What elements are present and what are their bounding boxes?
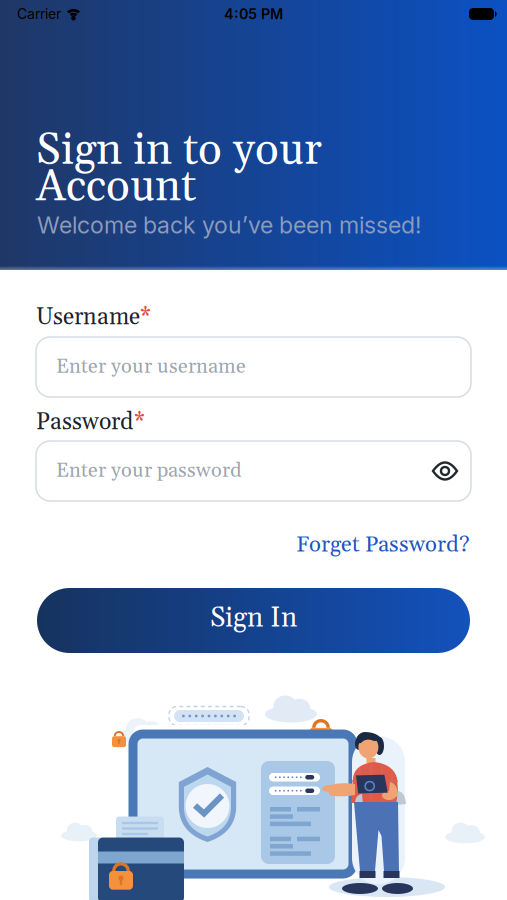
- staticText: Enter your username: [56, 354, 246, 380]
- button[interactable]: Show password: [432, 460, 458, 482]
- staticText: *: [134, 408, 145, 437]
- staticText: 4:05 PM: [224, 5, 283, 23]
- staticText: *: [140, 303, 151, 332]
- staticText: Sign in to your: [36, 123, 322, 179]
- staticText: Account: [36, 159, 196, 215]
- staticText: Password: [36, 408, 133, 437]
- staticText: Welcome back you’ve been missed!: [37, 211, 421, 239]
- staticText: Carrier: [17, 5, 61, 22]
- staticText: Forget Password?: [296, 531, 470, 559]
- button[interactable]: Enter your password: [36, 441, 471, 501]
- button[interactable]: Forget Password?: [296, 531, 470, 559]
- button[interactable]: Sign In: [37, 588, 470, 653]
- staticText: Sign In: [210, 601, 297, 636]
- staticText: Enter your password: [56, 458, 241, 484]
- button[interactable]: Enter your username: [36, 337, 471, 397]
- staticText: Username: [36, 303, 140, 332]
